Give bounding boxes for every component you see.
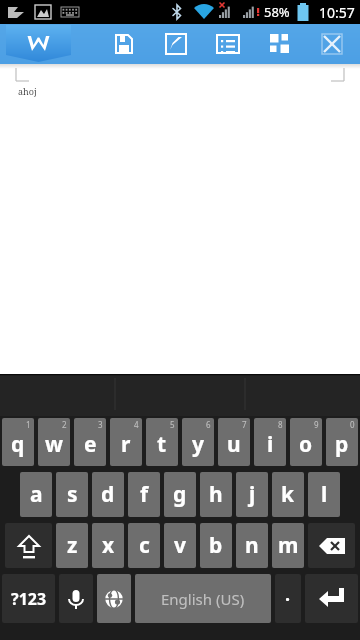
button[interactable]: 4 — [110, 418, 142, 466]
staticText: p — [335, 430, 349, 459]
button[interactable]: Save — [98, 24, 150, 64]
button[interactable]: Backspace — [308, 523, 355, 568]
button[interactable]: z — [56, 523, 88, 568]
staticText: 7 — [242, 419, 247, 430]
button[interactable]: x — [92, 523, 124, 568]
button[interactable]: c — [128, 523, 160, 568]
button[interactable]: 2 — [38, 418, 70, 466]
button[interactable]: s — [56, 472, 88, 517]
staticText: k — [281, 480, 295, 509]
staticText: 10:57 — [319, 3, 355, 22]
staticText: n — [245, 531, 259, 560]
button[interactable]: b — [200, 523, 232, 568]
button[interactable]: l — [308, 472, 340, 517]
staticText: r — [121, 430, 131, 459]
staticText: a — [30, 480, 43, 509]
staticText: ?123 — [11, 588, 47, 610]
staticText: 8 — [278, 419, 283, 430]
staticText: 1 — [26, 419, 31, 430]
staticText: h — [209, 480, 223, 509]
button[interactable]: f — [128, 472, 160, 517]
button[interactable]: k — [272, 472, 304, 517]
button[interactable]: Apps — [254, 24, 306, 64]
staticText: 2 — [62, 419, 67, 430]
staticText: 3 — [98, 419, 103, 430]
staticText: 6 — [206, 419, 211, 430]
button[interactable]: Close — [306, 24, 358, 64]
staticText: v — [174, 531, 186, 560]
staticText: 0 — [350, 419, 355, 430]
button[interactable]: ?123 — [2, 574, 55, 623]
button[interactable]: English (US) — [135, 574, 271, 623]
staticText: l — [321, 480, 328, 509]
button[interactable]: Enter — [305, 574, 358, 623]
button[interactable]: Change language — [97, 574, 131, 623]
staticText: u — [227, 430, 241, 459]
staticText: English (US) — [161, 589, 245, 609]
staticText: c — [139, 531, 150, 560]
button[interactable]: Voice input — [59, 574, 93, 623]
button[interactable]: m — [272, 523, 304, 568]
staticText: 4 — [134, 419, 139, 430]
staticText: g — [173, 480, 187, 509]
staticText: o — [299, 430, 313, 459]
staticText: ahoj — [18, 85, 37, 97]
staticText: . — [285, 582, 291, 607]
button[interactable]: v — [164, 523, 196, 568]
button[interactable]: Shift — [5, 523, 52, 568]
button[interactable]: 0 — [326, 418, 358, 466]
button[interactable]: 6 — [182, 418, 214, 466]
staticText: z — [67, 531, 78, 560]
staticText: s — [67, 480, 78, 509]
staticText: 5 — [170, 419, 175, 430]
button[interactable]: n — [236, 523, 268, 568]
staticText: e — [84, 430, 97, 459]
staticText: i — [267, 430, 274, 459]
button[interactable]: j — [236, 472, 268, 517]
button[interactable]: 7 — [218, 418, 250, 466]
button[interactable]: a — [20, 472, 52, 517]
staticText: t — [157, 430, 167, 459]
button[interactable]: h — [200, 472, 232, 517]
button[interactable]: d — [92, 472, 124, 517]
staticText: q — [11, 430, 25, 459]
staticText: 9 — [314, 419, 319, 430]
button[interactable]: 5 — [146, 418, 178, 466]
button[interactable]: 1 — [2, 418, 34, 466]
staticText: w — [45, 430, 63, 459]
button[interactable]: 8 — [254, 418, 286, 466]
staticText: m — [278, 531, 299, 560]
button[interactable]: . — [275, 574, 301, 623]
staticText: x — [102, 531, 115, 560]
staticText: d — [101, 480, 115, 509]
staticText: b — [209, 531, 223, 560]
button[interactable]: List — [202, 24, 254, 64]
button[interactable]: g — [164, 472, 196, 517]
button[interactable]: 3 — [74, 418, 106, 466]
staticText: j — [249, 480, 256, 509]
button[interactable]: 9 — [290, 418, 322, 466]
button[interactable]: Edit — [150, 24, 202, 64]
staticText: 58% — [264, 3, 290, 21]
button[interactable]: App logo — [6, 24, 71, 64]
staticText: f — [140, 480, 149, 509]
staticText: y — [192, 430, 204, 459]
